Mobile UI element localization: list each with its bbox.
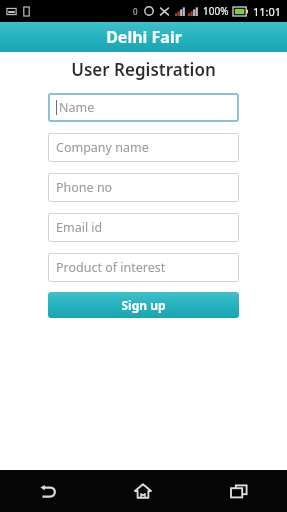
button[interactable]: Home [95, 470, 191, 512]
staticText: Name [59, 99, 95, 116]
staticText: 0 [133, 6, 138, 17]
staticText: 11:01 [253, 4, 282, 19]
staticText: Product of interest [56, 259, 166, 276]
button[interactable]: Recent apps [191, 470, 287, 512]
button[interactable]: Company name [48, 133, 239, 162]
button[interactable]: Sign up [48, 292, 239, 318]
staticText: Company name [56, 139, 149, 156]
staticText: Phone no [56, 179, 113, 196]
button[interactable]: Email id [48, 213, 239, 242]
staticText: 100% [203, 4, 229, 18]
button[interactable]: Name [48, 93, 239, 122]
button[interactable]: Phone no [48, 173, 239, 202]
staticText: Sign up [121, 297, 166, 313]
staticText: User Registration [0, 58, 287, 81]
staticText: Delhi Fair [106, 26, 182, 48]
button[interactable]: Back [0, 470, 95, 512]
staticText: Email id [56, 219, 103, 236]
button[interactable]: Product of interest [48, 253, 239, 282]
